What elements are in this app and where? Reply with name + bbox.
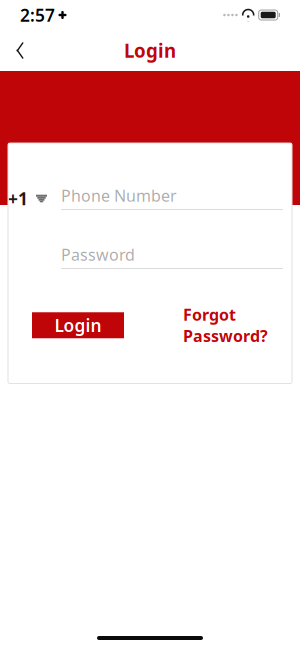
staticText: 2:57 [20,3,55,26]
staticText: +1 [8,187,28,210]
staticText: Forgot Password? [183,304,268,346]
staticText: Password [61,244,135,265]
button[interactable]: Select country calling code [8,181,47,216]
button[interactable]: Back [0,30,40,70]
button[interactable]: Forgot Password? [183,300,268,350]
staticText: Phone Number [61,185,177,206]
staticText: Login [54,314,101,337]
button[interactable]: Login [32,312,124,338]
staticText: Login [124,38,176,63]
